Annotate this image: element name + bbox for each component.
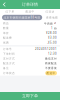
staticText: 商家配送 (45, 62, 57, 65)
staticText: -¥5.00 (47, 41, 57, 44)
staticText: 已送达 (45, 10, 54, 13)
staticText: 配送费 (3, 36, 12, 39)
button[interactable]: Back (0, 0, 9, 9)
staticText: 下单时间 (3, 52, 15, 55)
button[interactable]: 立即下单 (0, 92, 60, 100)
staticText: 数量 (3, 27, 9, 30)
staticText: ¥28.00 (46, 31, 57, 35)
staticText: 优惠 (3, 41, 9, 44)
staticText: 单价 (3, 31, 9, 35)
staticText: 支付方式 (3, 57, 15, 60)
staticText: 订单详情 (22, 2, 38, 7)
staticText: 订单号 (3, 47, 12, 51)
staticText: 配送中 (25, 10, 34, 13)
staticText: 微信支付 (45, 57, 57, 60)
staticText: 不要香菜 (45, 67, 57, 70)
staticText: 商品 (3, 22, 9, 25)
staticText: 配送方式 (3, 62, 15, 65)
staticText: 北京市朝阳区建国路88号院 (4, 16, 41, 19)
staticText: 1 份 (51, 26, 57, 30)
staticText: 立即下单 (22, 93, 38, 98)
staticText: 20240512001 (35, 47, 57, 51)
staticText: 牛肉面 x1 (44, 22, 57, 25)
staticText: ¥3.00 (48, 36, 57, 39)
staticText: 配送中 (47, 71, 56, 75)
staticText: 订单状态 (3, 71, 15, 75)
staticText: 查看地图 (46, 16, 58, 19)
staticText: 已下单 (5, 10, 14, 13)
staticText: 12:30 (48, 52, 57, 55)
staticText: 备注 (3, 67, 9, 70)
